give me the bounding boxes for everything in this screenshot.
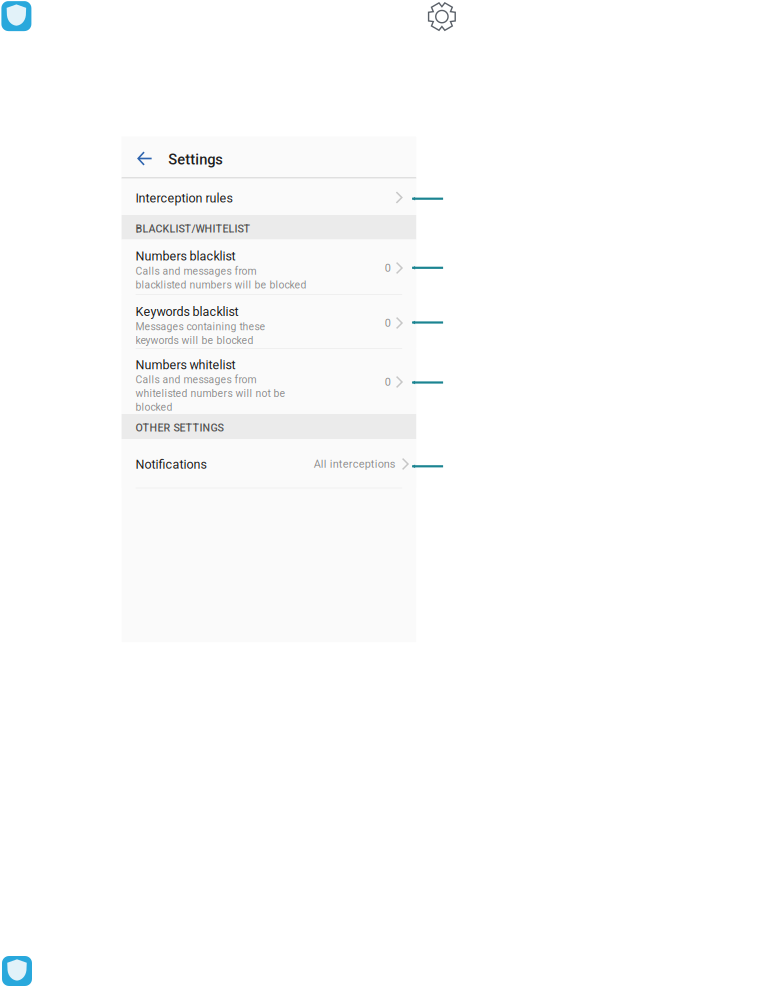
staticText: Numbers blacklist	[136, 249, 236, 264]
staticText: Notifications	[136, 457, 207, 472]
button[interactable]: Interception rules	[122, 179, 416, 215]
staticText: Numbers whitelist	[136, 357, 236, 372]
staticText: Calls and messages from	[136, 374, 257, 386]
staticText: Messages containing these	[136, 321, 266, 333]
staticText: Keywords blacklist	[136, 304, 239, 319]
staticText: 0	[385, 262, 391, 274]
staticText: blocked	[136, 401, 173, 413]
staticText: 0	[385, 317, 391, 329]
button[interactable]: Keywords blacklist	[122, 295, 416, 348]
staticText: Calls and messages from	[136, 265, 257, 277]
button[interactable]: Numbers whitelist	[122, 349, 416, 414]
staticText: Settings	[168, 151, 223, 168]
staticText: Interception rules	[136, 191, 233, 206]
staticText: keywords will be blocked	[136, 334, 254, 346]
staticText: 0	[385, 376, 391, 388]
button[interactable]: Notifications	[122, 439, 416, 487]
button[interactable]: Numbers blacklist	[122, 239, 416, 294]
staticText: BLACKLIST/WHITELIST	[136, 222, 251, 235]
button[interactable]: Settings	[425, 0, 459, 34]
staticText: blacklisted numbers will be blocked	[136, 279, 307, 291]
staticText: All interceptions	[314, 458, 396, 470]
staticText: OTHER SETTINGS	[136, 421, 224, 434]
staticText: whitelisted numbers will not be	[136, 387, 286, 400]
button[interactable]: Back	[132, 138, 158, 179]
